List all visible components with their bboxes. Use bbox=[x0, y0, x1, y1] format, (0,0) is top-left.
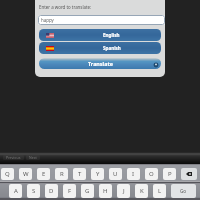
button[interactable]: Go bbox=[171, 184, 196, 198]
button[interactable]: E bbox=[37, 168, 50, 180]
button[interactable]: R bbox=[55, 168, 68, 180]
staticText: F bbox=[68, 187, 72, 195]
button[interactable]: A bbox=[9, 184, 22, 198]
staticText: Go bbox=[180, 188, 187, 194]
staticText: Y bbox=[96, 170, 100, 178]
button[interactable]: Spanish bbox=[39, 42, 161, 54]
button[interactable]: J bbox=[117, 184, 130, 198]
button[interactable]: Translate bbox=[39, 58, 161, 69]
staticText: U bbox=[113, 170, 118, 178]
staticText: S bbox=[32, 187, 36, 195]
button[interactable]: I bbox=[127, 168, 140, 180]
staticText: Q bbox=[5, 170, 10, 178]
staticText: P bbox=[168, 170, 172, 178]
button[interactable]: P bbox=[163, 168, 176, 180]
staticText: Next bbox=[29, 155, 37, 160]
staticText: A bbox=[14, 187, 18, 195]
staticText: D bbox=[49, 187, 54, 195]
button[interactable]: Backspace bbox=[181, 168, 197, 180]
button[interactable]: H bbox=[99, 184, 112, 198]
button[interactable]: O bbox=[145, 168, 158, 180]
staticText: E bbox=[42, 170, 46, 178]
staticText: Previous bbox=[6, 155, 21, 160]
button[interactable]: happy bbox=[38, 15, 165, 25]
button[interactable]: English bbox=[39, 29, 161, 41]
staticText: H bbox=[103, 187, 108, 195]
staticText: L bbox=[158, 187, 162, 195]
button[interactable]: Y bbox=[91, 168, 104, 180]
button[interactable]: W bbox=[19, 168, 32, 180]
staticText: R bbox=[60, 170, 64, 178]
staticText: K bbox=[140, 187, 144, 195]
staticText: O bbox=[149, 170, 154, 178]
staticText: G bbox=[85, 187, 90, 195]
button[interactable]: Info bbox=[153, 62, 159, 68]
button[interactable]: U bbox=[109, 168, 122, 180]
staticText: I bbox=[132, 170, 135, 178]
staticText: happy bbox=[41, 17, 54, 23]
button[interactable]: Q bbox=[1, 168, 14, 180]
staticText: J bbox=[123, 187, 125, 195]
staticText: Spanish bbox=[103, 45, 121, 51]
button[interactable]: F bbox=[63, 184, 76, 198]
button[interactable]: S bbox=[27, 184, 40, 198]
button[interactable]: L bbox=[153, 184, 166, 198]
staticText: W bbox=[23, 170, 29, 178]
button[interactable]: Next bbox=[29, 155, 37, 160]
button[interactable]: G bbox=[81, 184, 94, 198]
staticText: Translate bbox=[88, 60, 113, 67]
button[interactable]: Previous bbox=[6, 155, 21, 160]
staticText: English bbox=[103, 32, 120, 38]
staticText: Enter a word to translate: bbox=[39, 4, 92, 10]
button[interactable]: K bbox=[135, 184, 148, 198]
button[interactable]: T bbox=[73, 168, 86, 180]
staticText: T bbox=[78, 170, 82, 178]
button[interactable]: D bbox=[45, 184, 58, 198]
